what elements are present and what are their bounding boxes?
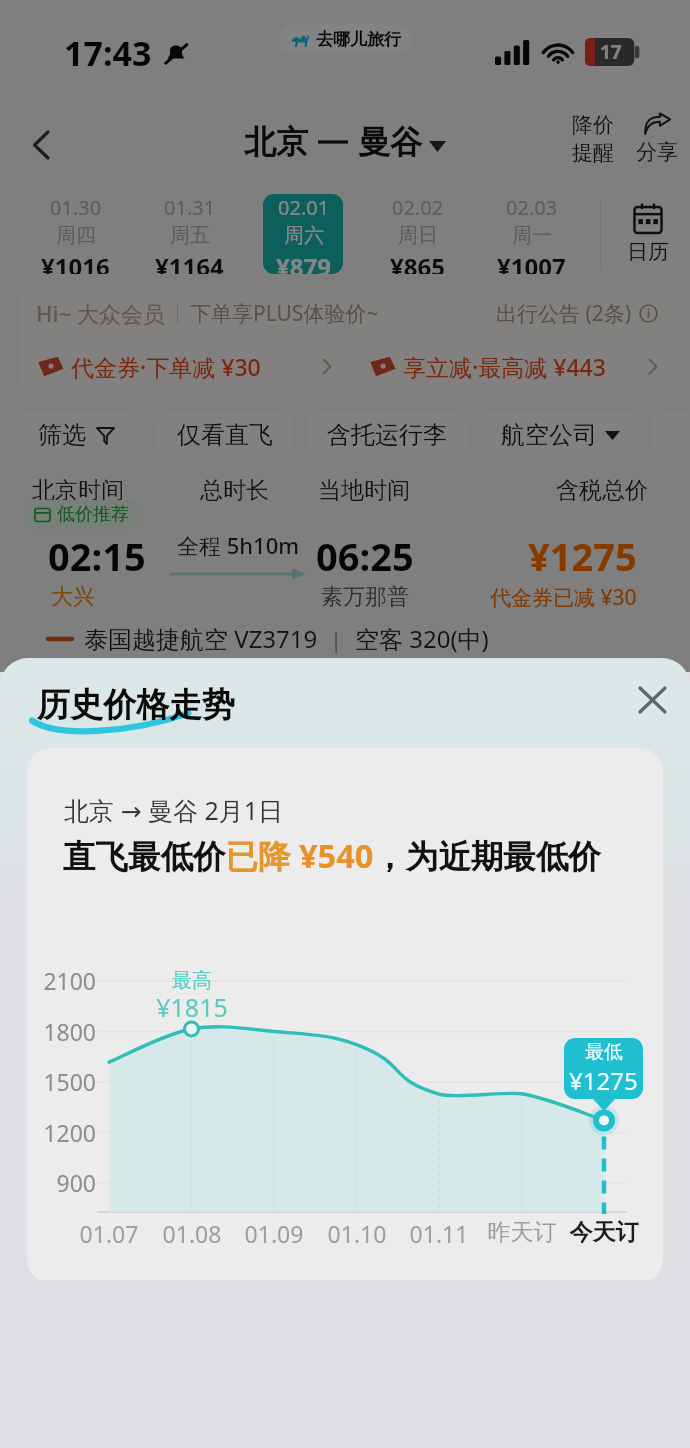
staticText: 代金券已减 ¥30 — [490, 583, 637, 612]
staticText: 01.07 — [64, 1218, 154, 1249]
staticText: 17 — [600, 39, 622, 65]
button[interactable]: 航空公司 — [481, 412, 640, 458]
staticText: 直飞最低价已降 ¥540，为近期最低价 — [63, 833, 601, 877]
staticText: 周一 — [512, 223, 552, 248]
staticText: 01.09 — [229, 1218, 319, 1249]
staticText: 北京 — [244, 122, 308, 162]
staticText: 曼谷 — [358, 122, 422, 162]
staticText: 北京时间 — [32, 476, 124, 505]
staticText: ¥1815 — [137, 990, 247, 1024]
button[interactable]: 低价推荐 — [0, 500, 690, 582]
staticText: 02.01 — [278, 194, 330, 221]
button[interactable]: 筛选 — [18, 412, 135, 458]
button[interactable]: Info — [639, 304, 658, 323]
staticText: 01.30 — [50, 194, 102, 221]
staticText: 1500 — [32, 1066, 96, 1097]
button[interactable]: Close — [626, 674, 678, 726]
button[interactable]: 02.01 — [263, 194, 343, 274]
staticText: 素万那普 — [321, 583, 409, 611]
staticText: 周日 — [398, 223, 438, 248]
staticText: 北京 → 曼谷 2月1日 — [64, 793, 284, 827]
button[interactable]: 含托运行李 — [307, 412, 467, 458]
staticText: ¥1007 — [497, 250, 566, 274]
staticText: 今天订 — [559, 1218, 649, 1247]
button[interactable]: 日历 — [608, 203, 688, 265]
staticText: 900 — [32, 1167, 96, 1198]
staticText: ¥879 — [276, 250, 331, 274]
button[interactable]: 02.02 — [377, 194, 457, 274]
staticText: 最低 — [585, 1040, 623, 1064]
staticText: 周五 — [170, 223, 210, 248]
staticText: Hi~ 大众会员 — [36, 298, 165, 328]
staticText: 筛选 — [38, 420, 86, 450]
staticText: | — [330, 624, 343, 654]
button[interactable]: 01.30 — [35, 194, 115, 274]
staticText: 17:43 — [64, 30, 152, 76]
staticText: 大兴 — [51, 583, 95, 611]
staticText: 代金券·下单减 ¥30 — [71, 351, 261, 382]
staticText: 分享 — [636, 139, 678, 165]
button[interactable]: 01.31 — [149, 194, 229, 274]
staticText: 历史价格走势 — [37, 684, 235, 726]
staticText: ¥1275 — [528, 530, 637, 582]
staticText: 01.31 — [164, 194, 216, 221]
staticText: 02:15 — [48, 530, 146, 582]
button[interactable]: 代金券·下单减 ¥30 — [36, 338, 332, 394]
button[interactable]: 降价 — [572, 112, 614, 166]
staticText: 日历 — [627, 239, 669, 265]
staticText: 含税总价 — [556, 476, 648, 505]
staticText: 航空公司 — [501, 420, 597, 450]
staticText: 2100 — [32, 965, 96, 996]
staticText: 低价推荐 — [57, 503, 129, 526]
staticText: 出行公告 (2条) — [496, 299, 632, 328]
button[interactable]: 02.03 — [491, 194, 571, 274]
staticText: 周六 — [284, 223, 324, 248]
staticText: 01.11 — [394, 1218, 484, 1249]
staticText: 泰国越捷航空 VZ3719 — [84, 622, 318, 655]
staticText: 01.08 — [147, 1218, 237, 1249]
staticText: 空客 320(中) — [355, 622, 489, 655]
staticText: 全程 5h10m — [177, 530, 300, 560]
staticText: 当地时间 — [318, 476, 410, 505]
staticText: 昨天订 — [477, 1218, 567, 1247]
staticText: 1200 — [32, 1117, 96, 1148]
button[interactable]: Back — [16, 121, 64, 169]
staticText: 周四 — [56, 223, 96, 248]
staticText: 提醒 — [572, 140, 614, 166]
staticText: 总时长 — [200, 476, 269, 505]
staticText: 02.03 — [506, 194, 558, 221]
staticText: 去哪儿旅行 — [316, 29, 401, 50]
staticText: 含托运行李 — [327, 420, 447, 450]
staticText: ¥1016 — [41, 250, 110, 274]
staticText: 06:25 — [316, 530, 414, 582]
staticText: 仅看直飞 — [177, 420, 273, 450]
staticText: 最高 — [137, 968, 247, 993]
staticText: ¥1275 — [569, 1064, 638, 1097]
staticText: 下单享PLUS体验价~ — [190, 299, 379, 328]
button[interactable]: 享立减·最高减 ¥443 — [368, 338, 658, 394]
button[interactable]: 仅看直飞 — [157, 412, 293, 458]
staticText: 降价 — [572, 112, 614, 138]
staticText: 1800 — [32, 1016, 96, 1047]
button[interactable]: 分享 — [636, 112, 678, 165]
staticText: ¥1164 — [155, 250, 224, 274]
staticText: 01.10 — [312, 1218, 402, 1249]
staticText: 享立减·最高减 ¥443 — [403, 351, 606, 382]
staticText: 02.02 — [392, 194, 444, 221]
staticText: ¥865 — [390, 250, 445, 274]
